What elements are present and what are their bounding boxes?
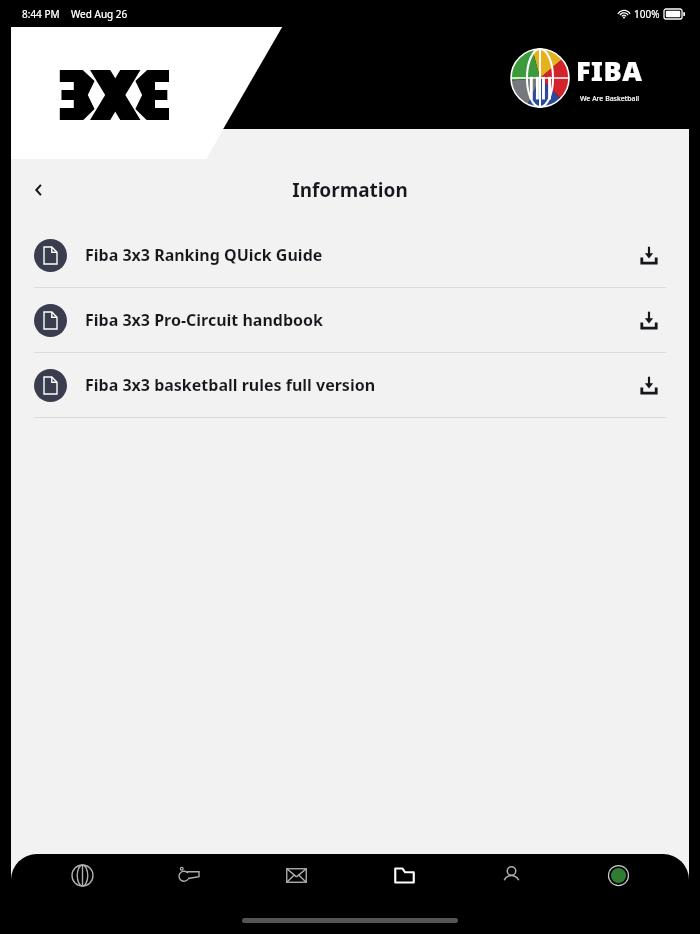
- staticText: Fiba 3x3 Pro-Circuit handbook: [85, 309, 632, 331]
- button[interactable]: Live: [582, 854, 654, 902]
- button[interactable]: Games: [46, 854, 118, 902]
- staticText: 8:44 PM: [22, 7, 60, 21]
- button[interactable]: Back: [19, 170, 59, 210]
- button[interactable]: Fiba 3x3 Pro-Circuit handbook: [11, 288, 689, 353]
- staticText: 100%: [634, 7, 660, 21]
- button[interactable]: Profile: [475, 854, 547, 902]
- staticText: FIBA: [576, 52, 643, 89]
- button[interactable]: Download: [632, 368, 666, 402]
- button[interactable]: Fiba 3x3 Ranking QUick Guide: [11, 223, 689, 288]
- button[interactable]: Fiba 3x3 basketball rules full version: [11, 353, 689, 418]
- staticText: Fiba 3x3 Ranking QUick Guide: [85, 244, 632, 266]
- button[interactable]: Messages: [260, 854, 332, 902]
- staticText: Fiba 3x3 basketball rules full version: [85, 374, 632, 396]
- staticText: Information: [11, 177, 689, 203]
- staticText: We Are Basketball: [580, 94, 640, 104]
- button[interactable]: Documents: [368, 854, 440, 902]
- staticText: Wed Aug 26: [71, 7, 128, 21]
- button[interactable]: Download: [632, 303, 666, 337]
- button[interactable]: Referees: [153, 854, 225, 902]
- button[interactable]: Download: [632, 238, 666, 272]
